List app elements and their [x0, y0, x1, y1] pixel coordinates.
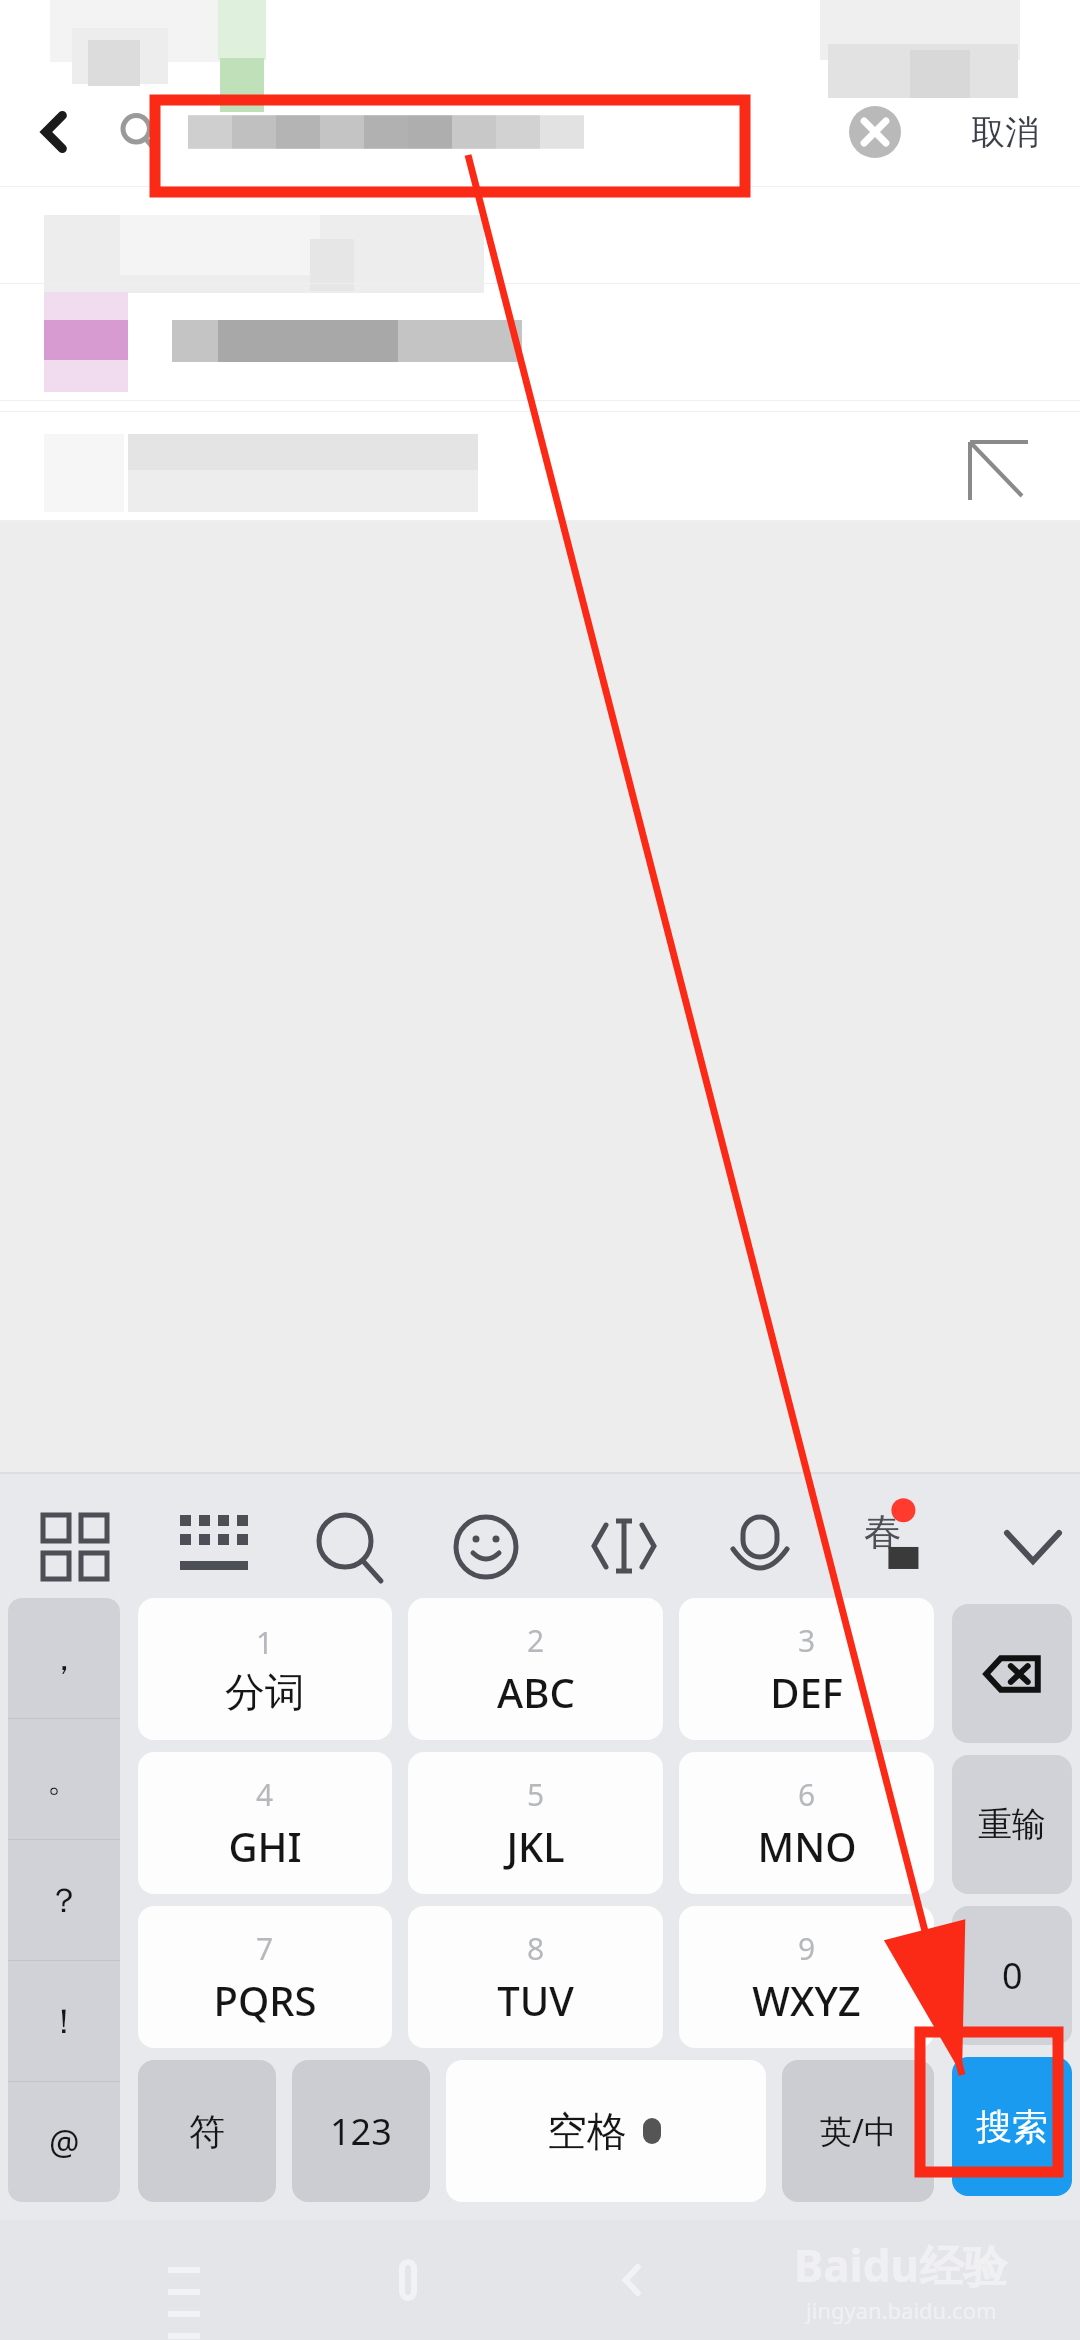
staticText: 6 [798, 1774, 816, 1815]
staticText: ABC [497, 1665, 575, 1719]
staticText: 。 [47, 1758, 81, 1801]
staticText: 搜索 [976, 2104, 1048, 2149]
staticText: 8 [527, 1928, 545, 1969]
button[interactable]: @ [8, 2082, 120, 2202]
button[interactable]: Edit text [575, 1498, 643, 1566]
button[interactable]: Recents [144, 2240, 224, 2320]
button[interactable]: ！ [8, 1961, 120, 2081]
button[interactable]: 春 [849, 1498, 917, 1566]
button[interactable]: ， [8, 1598, 120, 1718]
staticText: 符 [189, 2109, 225, 2154]
staticText: 5 [527, 1774, 545, 1815]
button[interactable]: Hide keyboard [986, 1498, 1054, 1566]
button[interactable]: 取消 [930, 78, 1080, 186]
button[interactable]: Emoji [437, 1498, 505, 1566]
staticText: 英/中 [820, 2109, 896, 2153]
staticText: Baidu经验 [794, 2235, 1008, 2295]
button[interactable]: 符 [138, 2060, 276, 2202]
button[interactable] [0, 187, 1080, 283]
button[interactable] [168, 78, 820, 186]
button[interactable]: 9 [679, 1906, 934, 2048]
staticText: 春 [864, 1508, 902, 1556]
button[interactable]: 7 [138, 1906, 392, 2048]
staticText: ？ [47, 1879, 81, 1922]
button[interactable]: Home [368, 2240, 448, 2320]
button[interactable]: 搜索 [952, 2057, 1072, 2196]
staticText: 空格 [547, 2106, 627, 2156]
button[interactable]: 123 [292, 2060, 430, 2202]
button[interactable]: 重输 [952, 1755, 1072, 1894]
staticText: 123 [330, 2107, 392, 2156]
button[interactable]: Backspace [952, 1604, 1072, 1743]
staticText: PQRS [213, 1973, 317, 2027]
staticText: JKL [506, 1819, 565, 1873]
staticText: 7 [256, 1928, 274, 1969]
staticText: GHI [228, 1819, 302, 1873]
staticText: DEF [770, 1665, 843, 1719]
button[interactable]: 0 [952, 1906, 1072, 2045]
button[interactable] [0, 412, 1080, 520]
staticText: WXYZ [752, 1973, 861, 2027]
staticText: TUV [497, 1973, 574, 2027]
staticText: ， [47, 1637, 81, 1680]
staticText: @ [49, 2119, 80, 2165]
staticText: 0 [1002, 1951, 1023, 2000]
button[interactable]: 3 [679, 1598, 934, 1740]
staticText: 取消 [971, 111, 1039, 154]
button[interactable]: 英/中 [782, 2060, 934, 2202]
button[interactable]: 。 [8, 1719, 120, 1839]
button[interactable]: Voice input [712, 1498, 780, 1566]
button[interactable]: Keyboard [163, 1498, 231, 1566]
staticText: 1 [256, 1622, 274, 1663]
button[interactable]: Search [300, 1498, 368, 1566]
button[interactable]: Grid [26, 1498, 94, 1566]
button[interactable]: 5 [408, 1752, 663, 1894]
button[interactable]: Back [0, 78, 110, 186]
staticText: MNO [757, 1819, 857, 1873]
staticText: 重输 [978, 1803, 1046, 1846]
button[interactable]: ？ [8, 1840, 120, 1960]
staticText: jingyan.baidu.com [806, 2295, 997, 2325]
button[interactable]: 空格 [446, 2060, 766, 2202]
staticText: ！ [47, 2000, 81, 2043]
staticText: 4 [256, 1774, 274, 1815]
staticText: 3 [798, 1620, 816, 1661]
button[interactable]: 6 [679, 1752, 934, 1894]
button[interactable]: Clear [820, 78, 930, 186]
button[interactable] [0, 284, 1080, 400]
button[interactable]: 1 [138, 1598, 392, 1740]
staticText: 9 [798, 1928, 816, 1969]
button[interactable]: 2 [408, 1598, 663, 1740]
staticText: 分词 [225, 1667, 305, 1717]
staticText: 2 [527, 1620, 545, 1661]
button[interactable]: 4 [138, 1752, 392, 1894]
button[interactable]: 8 [408, 1906, 663, 2048]
